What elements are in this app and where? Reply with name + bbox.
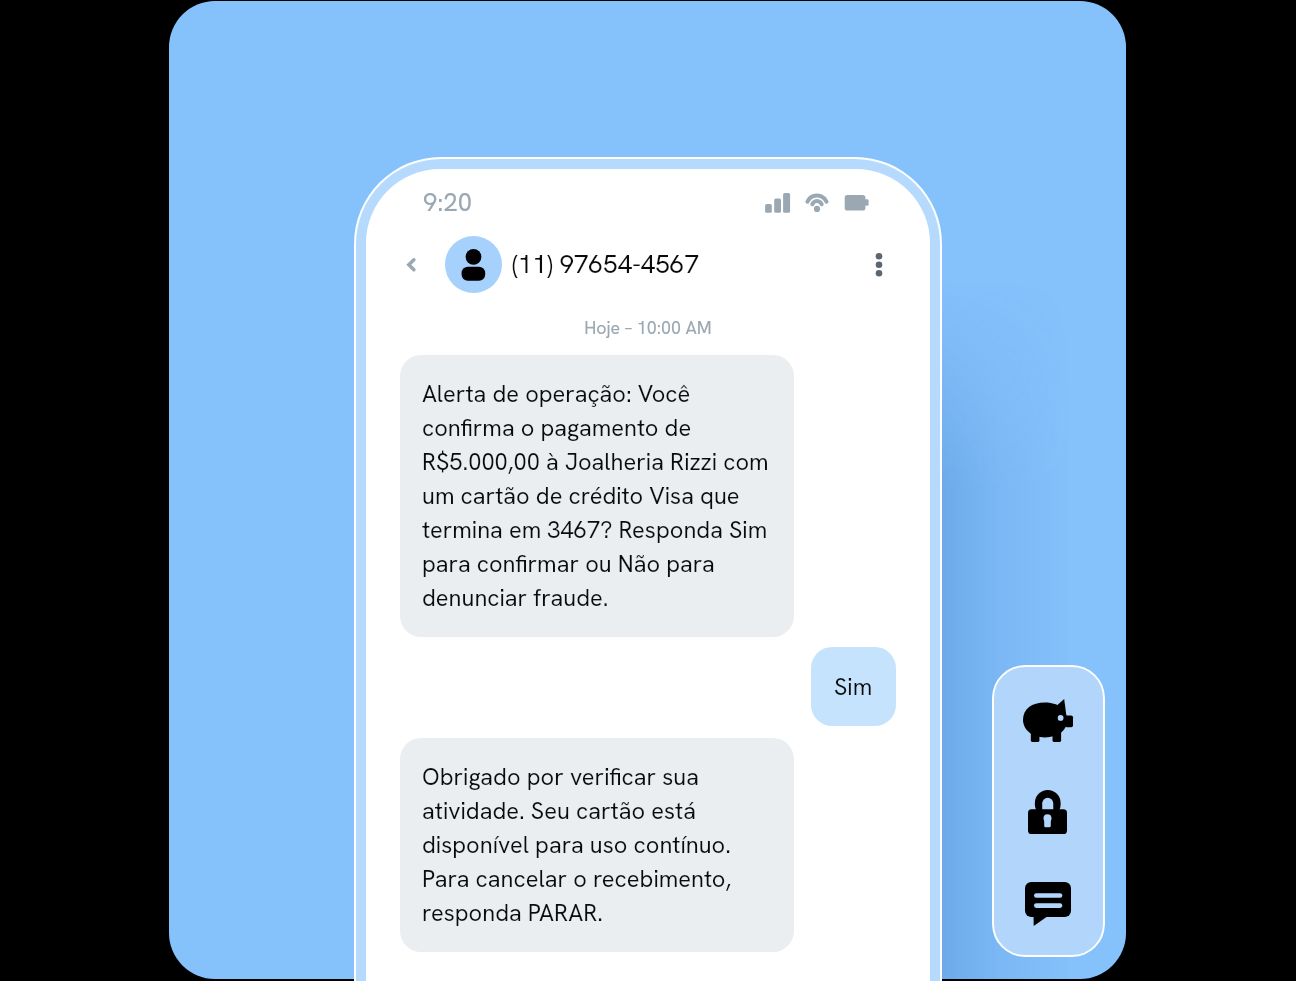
button[interactable]: Messages: [1025, 882, 1071, 926]
staticText: 9:20: [423, 185, 472, 218]
button[interactable]: Back: [393, 246, 429, 283]
button[interactable]: More options: [861, 246, 897, 283]
staticText: Hoje – 10:00 AM: [366, 316, 930, 981]
staticText: Obrigado por verificar sua atividade. Se…: [422, 761, 772, 929]
button[interactable]: Obrigado por verificar sua atividade. Se…: [400, 738, 794, 952]
button[interactable]: Contact avatar: [445, 236, 502, 293]
staticText: Sim: [834, 671, 873, 702]
button[interactable]: Alerta de operação: Você confirma o paga…: [400, 355, 794, 637]
staticText: Alerta de operação: Você confirma o paga…: [422, 378, 772, 614]
button[interactable]: Sim: [811, 647, 896, 726]
button[interactable]: Savings: [1023, 699, 1073, 742]
staticText: (11) 97654-4567: [512, 247, 699, 281]
button[interactable]: Security: [1028, 790, 1067, 834]
